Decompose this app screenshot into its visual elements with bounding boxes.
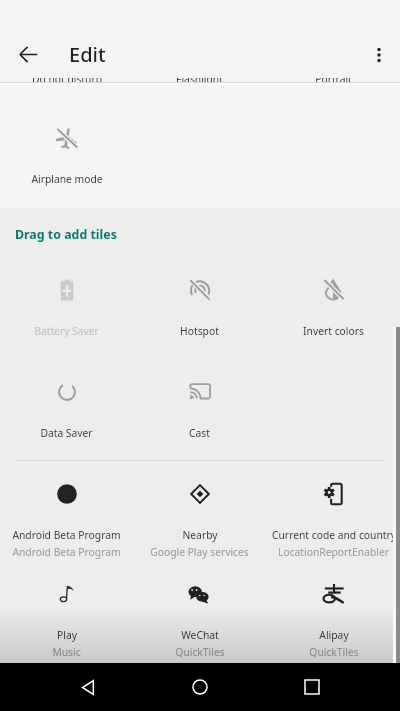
staticText: LocationReportEnabler [278,545,389,559]
button[interactable]: Back [4,31,52,78]
staticText: Portrait [315,72,352,86]
button[interactable]: Cast [133,380,266,440]
staticText: WeChat [181,628,219,642]
staticText: Hotspot [180,324,219,338]
staticText: Data Saver [40,426,93,440]
staticText: Edit [69,41,106,68]
button[interactable]: Airplane mode [0,126,133,186]
staticText: Invert colors [303,324,364,338]
button[interactable]: Play [0,582,133,659]
button[interactable]: Data Saver [0,380,133,440]
staticText: Alipay [319,628,349,642]
button[interactable]: More options [357,33,400,77]
staticText: QuickTiles [175,645,225,659]
staticText: Do not disturb [32,72,102,86]
button[interactable]: Recents [288,663,336,711]
button[interactable]: Android Beta Program [0,482,133,559]
staticText: QuickTiles [309,645,359,659]
button[interactable]: Battery Saver [0,278,133,338]
button[interactable]: Nearby [133,482,266,559]
button[interactable]: Back [64,663,112,711]
staticText: Android Beta Program [12,528,121,542]
staticText: Music [52,645,81,659]
staticText: Drag to add tiles [15,226,117,243]
staticText: Cast [189,426,210,440]
button[interactable]: Invert colors [267,278,400,338]
staticText: Play [57,628,77,642]
button[interactable]: Alipay [267,582,400,659]
button[interactable]: WeChat [133,582,266,659]
staticText: Battery Saver [34,324,99,338]
button[interactable]: Home [176,663,224,711]
staticText: Airplane mode [31,172,103,186]
button[interactable]: Current code and country [267,482,400,559]
staticText: Nearby [182,528,218,542]
staticText: Google Play services [150,545,249,559]
staticText: Android Beta Program [12,545,121,559]
staticText: Flashlight [176,72,223,86]
button[interactable]: Hotspot [133,278,266,338]
staticText: Current code and country [272,528,396,542]
